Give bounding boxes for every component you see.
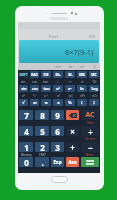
- staticText: x!: [93, 65, 96, 69]
- button[interactable]: −: [81, 142, 99, 152]
- button[interactable]: 9: [51, 110, 64, 120]
- button[interactable]: FSE: [41, 71, 51, 78]
- button[interactable]: 0: [19, 157, 33, 167]
- staticText: 9: [55, 110, 60, 120]
- button[interactable]: 7: [19, 110, 33, 120]
- button[interactable]: tan: [41, 85, 51, 92]
- staticText: tan⁻: [43, 80, 49, 84]
- staticText: nPr: [80, 94, 85, 98]
- staticText: 1: [24, 142, 29, 152]
- button[interactable]: (: [77, 99, 87, 106]
- staticText: 10ˣ: [92, 80, 97, 84]
- button[interactable]: Log: [89, 85, 99, 92]
- button[interactable]: Equals: [81, 157, 99, 167]
- staticText: MC: [91, 72, 97, 77]
- button[interactable]: Ans: [66, 157, 79, 167]
- staticText: M-: [68, 72, 73, 77]
- button[interactable]: ln: [77, 85, 87, 92]
- button[interactable]: %: [65, 99, 75, 106]
- staticText: DEG: [89, 35, 96, 39]
- staticText: ÷: [88, 126, 93, 136]
- button[interactable]: xⁿ: [65, 85, 75, 92]
- staticText: ³√: [33, 94, 36, 98]
- button[interactable]: 5: [35, 126, 49, 136]
- button[interactable]: π: [41, 99, 51, 106]
- staticText: 8: [40, 110, 45, 120]
- staticText: e: [57, 100, 60, 106]
- button[interactable]: +: [66, 142, 79, 152]
- staticText: (: [81, 100, 83, 106]
- staticText: Memory: [21, 153, 32, 157]
- staticText: xⁿ: [68, 86, 72, 91]
- staticText: 2: [40, 142, 45, 152]
- staticText: x⁻¹: [44, 94, 48, 98]
- button[interactable]: 3: [51, 142, 64, 152]
- button[interactable]: 6: [51, 126, 64, 136]
- staticText: 8×7(9-1): [65, 47, 94, 57]
- button[interactable]: MC: [89, 71, 99, 78]
- staticText: ln: [80, 86, 84, 91]
- staticText: sto: [68, 65, 73, 69]
- button[interactable]: Exp: [51, 157, 64, 167]
- button[interactable]: 2: [35, 142, 49, 152]
- button[interactable]: SHIFT: [19, 71, 28, 78]
- staticText: M+: [55, 72, 61, 77]
- staticText: −: [88, 142, 93, 152]
- staticText: 0: [24, 157, 29, 167]
- staticText: ⁿ√: [68, 80, 72, 84]
- staticText: 6: [55, 126, 60, 136]
- button[interactable]: AC: [81, 110, 99, 120]
- staticText: Pixel: [49, 34, 58, 39]
- staticText: ×: [70, 126, 75, 136]
- staticText: xʸ: [33, 100, 37, 105]
- button[interactable]: e: [53, 99, 63, 106]
- staticText: FSE: [43, 73, 49, 77]
- staticText: CNST: [39, 153, 46, 157]
- staticText: MR: [79, 72, 85, 77]
- button[interactable]: RAD: [30, 71, 39, 78]
- button[interactable]: .: [35, 157, 49, 167]
- button[interactable]: 8: [35, 110, 49, 120]
- staticText: x²: [56, 86, 60, 91]
- staticText: Percent: [85, 137, 95, 141]
- button[interactable]: M+: [53, 71, 63, 78]
- staticText: |x|: [68, 94, 73, 98]
- staticText: %: [68, 100, 72, 106]
- staticText: rcl: [80, 65, 84, 69]
- staticText: Menu: [86, 153, 94, 157]
- staticText: cos: [32, 86, 38, 91]
- button[interactable]: ): [89, 99, 99, 106]
- staticText: 7: [24, 110, 29, 120]
- button[interactable]: ÷: [81, 126, 99, 136]
- staticText: 5: [40, 126, 45, 136]
- staticText: SHIFT: [19, 73, 28, 77]
- staticText: RAD: [31, 73, 38, 77]
- button[interactable]: 4: [19, 126, 33, 136]
- staticText: 3: [55, 142, 60, 152]
- button[interactable]: x²: [53, 85, 63, 92]
- button[interactable]: sin: [19, 85, 28, 92]
- staticText: 4: [24, 126, 29, 136]
- staticText: Ans: [68, 159, 77, 165]
- staticText: sin: [21, 86, 27, 91]
- staticText: Exp: [53, 159, 62, 165]
- staticText: min: [55, 65, 61, 69]
- button[interactable]: 1: [19, 142, 33, 152]
- staticText: n!: [57, 94, 60, 98]
- staticText: eˣ: [81, 80, 84, 84]
- button[interactable]: cos: [30, 85, 39, 92]
- staticText: √: [57, 80, 59, 83]
- staticText: nCr: [92, 94, 97, 98]
- button[interactable]: √: [19, 99, 28, 106]
- staticText: sin⁻: [21, 80, 26, 84]
- staticText: Log: [91, 86, 98, 91]
- button[interactable]: ×: [66, 126, 79, 136]
- button[interactable]: Delete: [66, 110, 79, 120]
- staticText: +: [70, 142, 75, 152]
- button[interactable]: MR: [77, 71, 87, 78]
- staticText: x³: [22, 94, 25, 98]
- staticText: π: [44, 100, 48, 106]
- button[interactable]: M-: [65, 71, 75, 78]
- button[interactable]: xʸ: [30, 99, 39, 106]
- staticText: Ratio: [87, 121, 94, 125]
